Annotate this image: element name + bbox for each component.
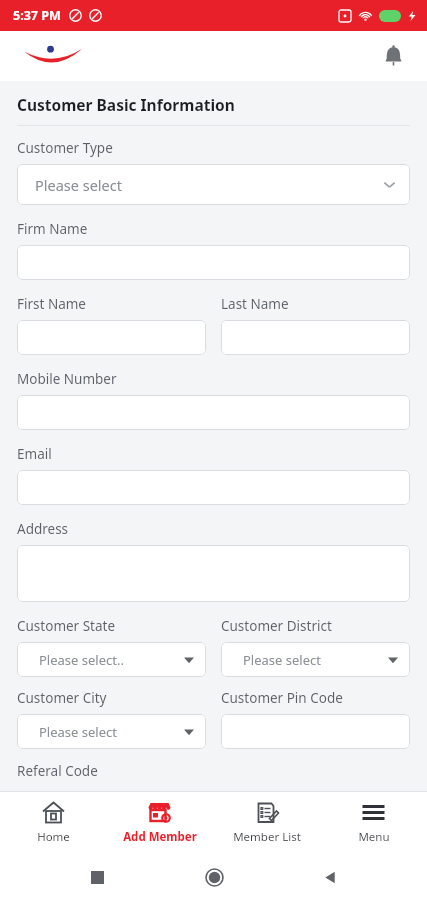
button[interactable]: Please select.. [17, 642, 206, 677]
button[interactable]: Back [314, 861, 346, 893]
button[interactable]: Please select [17, 164, 410, 205]
staticText: Mobile Number [17, 370, 117, 388]
button[interactable]: Notifications [375, 38, 411, 74]
button[interactable]: Member List [213, 792, 320, 853]
button[interactable] [17, 245, 410, 280]
button[interactable]: Recent apps [81, 861, 113, 893]
staticText: Please select [35, 175, 122, 195]
staticText: Home [37, 829, 70, 845]
staticText: Customer Pin Code [221, 689, 343, 707]
button[interactable] [17, 545, 410, 602]
staticText: Customer State [17, 617, 116, 635]
staticText: Customer Basic Information [17, 94, 235, 115]
button[interactable] [17, 395, 410, 430]
staticText: 5:37 PM [13, 7, 61, 24]
button[interactable] [17, 320, 206, 355]
button[interactable]: Add Member [106, 792, 213, 853]
button[interactable]: Menu [320, 792, 427, 853]
button[interactable] [221, 320, 410, 355]
staticText: Please select.. [39, 651, 124, 669]
staticText: Firm Name [17, 220, 88, 238]
button[interactable]: Please select [17, 714, 206, 749]
staticText: Please select [39, 723, 117, 741]
button[interactable]: Home [0, 792, 106, 853]
staticText: Member List [233, 829, 301, 845]
staticText: Add Member [123, 829, 197, 845]
staticText: Customer District [221, 617, 332, 635]
staticText: Email [17, 445, 52, 463]
button[interactable] [221, 714, 410, 749]
staticText: Menu [358, 829, 390, 845]
button[interactable]: Home [198, 861, 230, 893]
staticText: Referal Code [17, 762, 98, 780]
button[interactable] [17, 470, 410, 505]
staticText: First Name [17, 295, 86, 313]
button[interactable]: App logo [22, 43, 84, 69]
button[interactable]: Please select [221, 642, 410, 677]
staticText: Customer City [17, 689, 107, 707]
staticText: Address [17, 520, 69, 538]
staticText: Please select [243, 651, 321, 669]
staticText: Customer Type [17, 139, 113, 157]
staticText: Last Name [221, 295, 289, 313]
